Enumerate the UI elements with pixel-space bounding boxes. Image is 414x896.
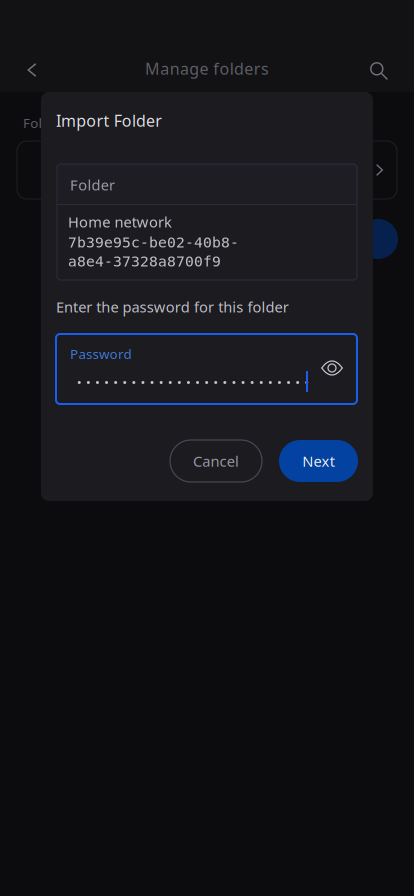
button[interactable]: Cancel	[170, 440, 262, 482]
staticText: Manage folders	[145, 58, 269, 79]
staticText: Folder	[70, 175, 115, 194]
staticText: Folders	[23, 114, 71, 132]
button[interactable]: Next	[279, 440, 358, 482]
button[interactable]: Search	[358, 50, 402, 94]
button[interactable]: Back	[10, 48, 54, 92]
staticText: Home network	[68, 212, 172, 231]
staticText: Import Folder	[56, 110, 162, 131]
button[interactable]: Folder	[17, 141, 397, 199]
staticText: Next	[302, 451, 335, 471]
staticText: Cancel	[193, 451, 239, 471]
button[interactable]: Show password	[315, 351, 349, 385]
staticText: Password	[70, 345, 131, 363]
staticText: 7b39e95c-be02-40b8-	[68, 234, 239, 251]
button[interactable]: Add folder	[358, 219, 398, 259]
staticText: Enter the password for this folder	[56, 297, 289, 316]
staticText: a8e4-37328a8700f9	[68, 253, 221, 270]
